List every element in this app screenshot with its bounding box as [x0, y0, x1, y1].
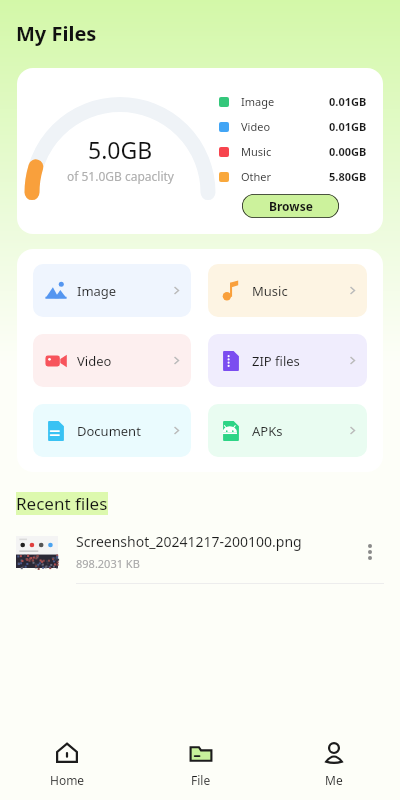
staticText: Screenshot_20241217-200100.png — [76, 532, 302, 551]
button[interactable]: File — [134, 728, 267, 800]
staticText: Browse — [269, 198, 313, 214]
staticText: of 51.0GB capaclity — [67, 168, 174, 184]
button[interactable]: Video — [33, 334, 191, 387]
staticText: APKs — [252, 422, 347, 440]
button[interactable]: More options — [356, 538, 384, 566]
staticText: File — [191, 772, 211, 788]
staticText: ZIP files — [252, 352, 347, 370]
staticText: Home — [50, 772, 85, 788]
button[interactable]: ZIP files — [208, 334, 367, 387]
button[interactable]: Document — [33, 404, 191, 457]
button[interactable]: Image — [33, 264, 191, 317]
staticText: Image — [77, 282, 171, 300]
staticText: 0.01GB — [329, 119, 367, 134]
staticText: Recent files — [16, 492, 108, 515]
staticText: Music — [241, 144, 329, 159]
button[interactable]: Music — [208, 264, 367, 317]
staticText: 0.00GB — [329, 144, 367, 159]
staticText: Music — [252, 282, 347, 300]
staticText: 898.2031 KB — [76, 556, 140, 571]
staticText: Video — [241, 119, 329, 134]
staticText: Image — [241, 94, 329, 109]
staticText: Video — [77, 352, 171, 370]
button[interactable]: Me — [267, 728, 400, 800]
staticText: Me — [325, 772, 343, 788]
button[interactable]: Home — [0, 728, 134, 800]
staticText: 0.01GB — [329, 94, 367, 109]
button[interactable]: Browse — [242, 194, 339, 218]
staticText: 5.80GB — [329, 169, 367, 184]
button[interactable]: APKs — [208, 404, 367, 457]
button[interactable]: Screenshot_20241217-200100.png — [0, 532, 400, 584]
staticText: My Files — [16, 20, 97, 47]
staticText: Other — [241, 169, 329, 184]
staticText: 5.0GB — [88, 134, 153, 165]
staticText: Document — [77, 422, 171, 440]
